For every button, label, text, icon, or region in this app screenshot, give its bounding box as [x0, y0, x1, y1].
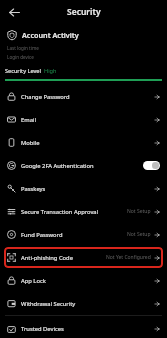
button[interactable]: Secure Transaction Approval [0, 200, 167, 223]
button[interactable]: Back [4, 2, 24, 22]
button[interactable]: Account Activity [0, 24, 167, 60]
button[interactable]: Mobile [0, 131, 167, 154]
staticText: Not Setup [127, 231, 151, 238]
staticText: Not Setup [127, 208, 151, 215]
staticText: Withdrawal Security [21, 300, 76, 308]
staticText: Security [67, 6, 101, 18]
staticText: Email [21, 116, 36, 124]
button[interactable]: Anti-phishing Code [4, 247, 163, 268]
staticText: Not Yet Configured [106, 254, 151, 261]
staticText: Google 2FA Authentication [21, 162, 94, 170]
button[interactable]: Trusted Devices [0, 320, 167, 338]
button[interactable]: Google 2FA Authentication [0, 154, 167, 177]
button[interactable]: Passkeys [0, 177, 167, 200]
staticText: Change Password [21, 93, 70, 101]
staticText: Passkeys [21, 185, 46, 193]
staticText: Trusted Devices [21, 325, 64, 333]
staticText: High [44, 67, 57, 75]
staticText: App Lock [21, 277, 46, 285]
button[interactable]: Change Password [0, 85, 167, 108]
button[interactable]: Fund Password [0, 223, 167, 246]
button[interactable]: Email [0, 108, 167, 131]
staticText: Anti-phishing Code [21, 254, 73, 262]
staticText: Last login time [7, 45, 39, 51]
button[interactable]: Google 2FA Authentication toggle [143, 161, 160, 170]
button[interactable]: Withdrawal Security [0, 292, 167, 315]
staticText: Fund Password [21, 231, 63, 239]
staticText: Login device [7, 54, 34, 60]
staticText: Mobile [21, 139, 40, 147]
staticText: Security Level [5, 67, 41, 75]
staticText: Account Activity [22, 30, 79, 40]
button[interactable]: App Lock [0, 269, 167, 292]
staticText: Secure Transaction Approval [21, 208, 99, 216]
